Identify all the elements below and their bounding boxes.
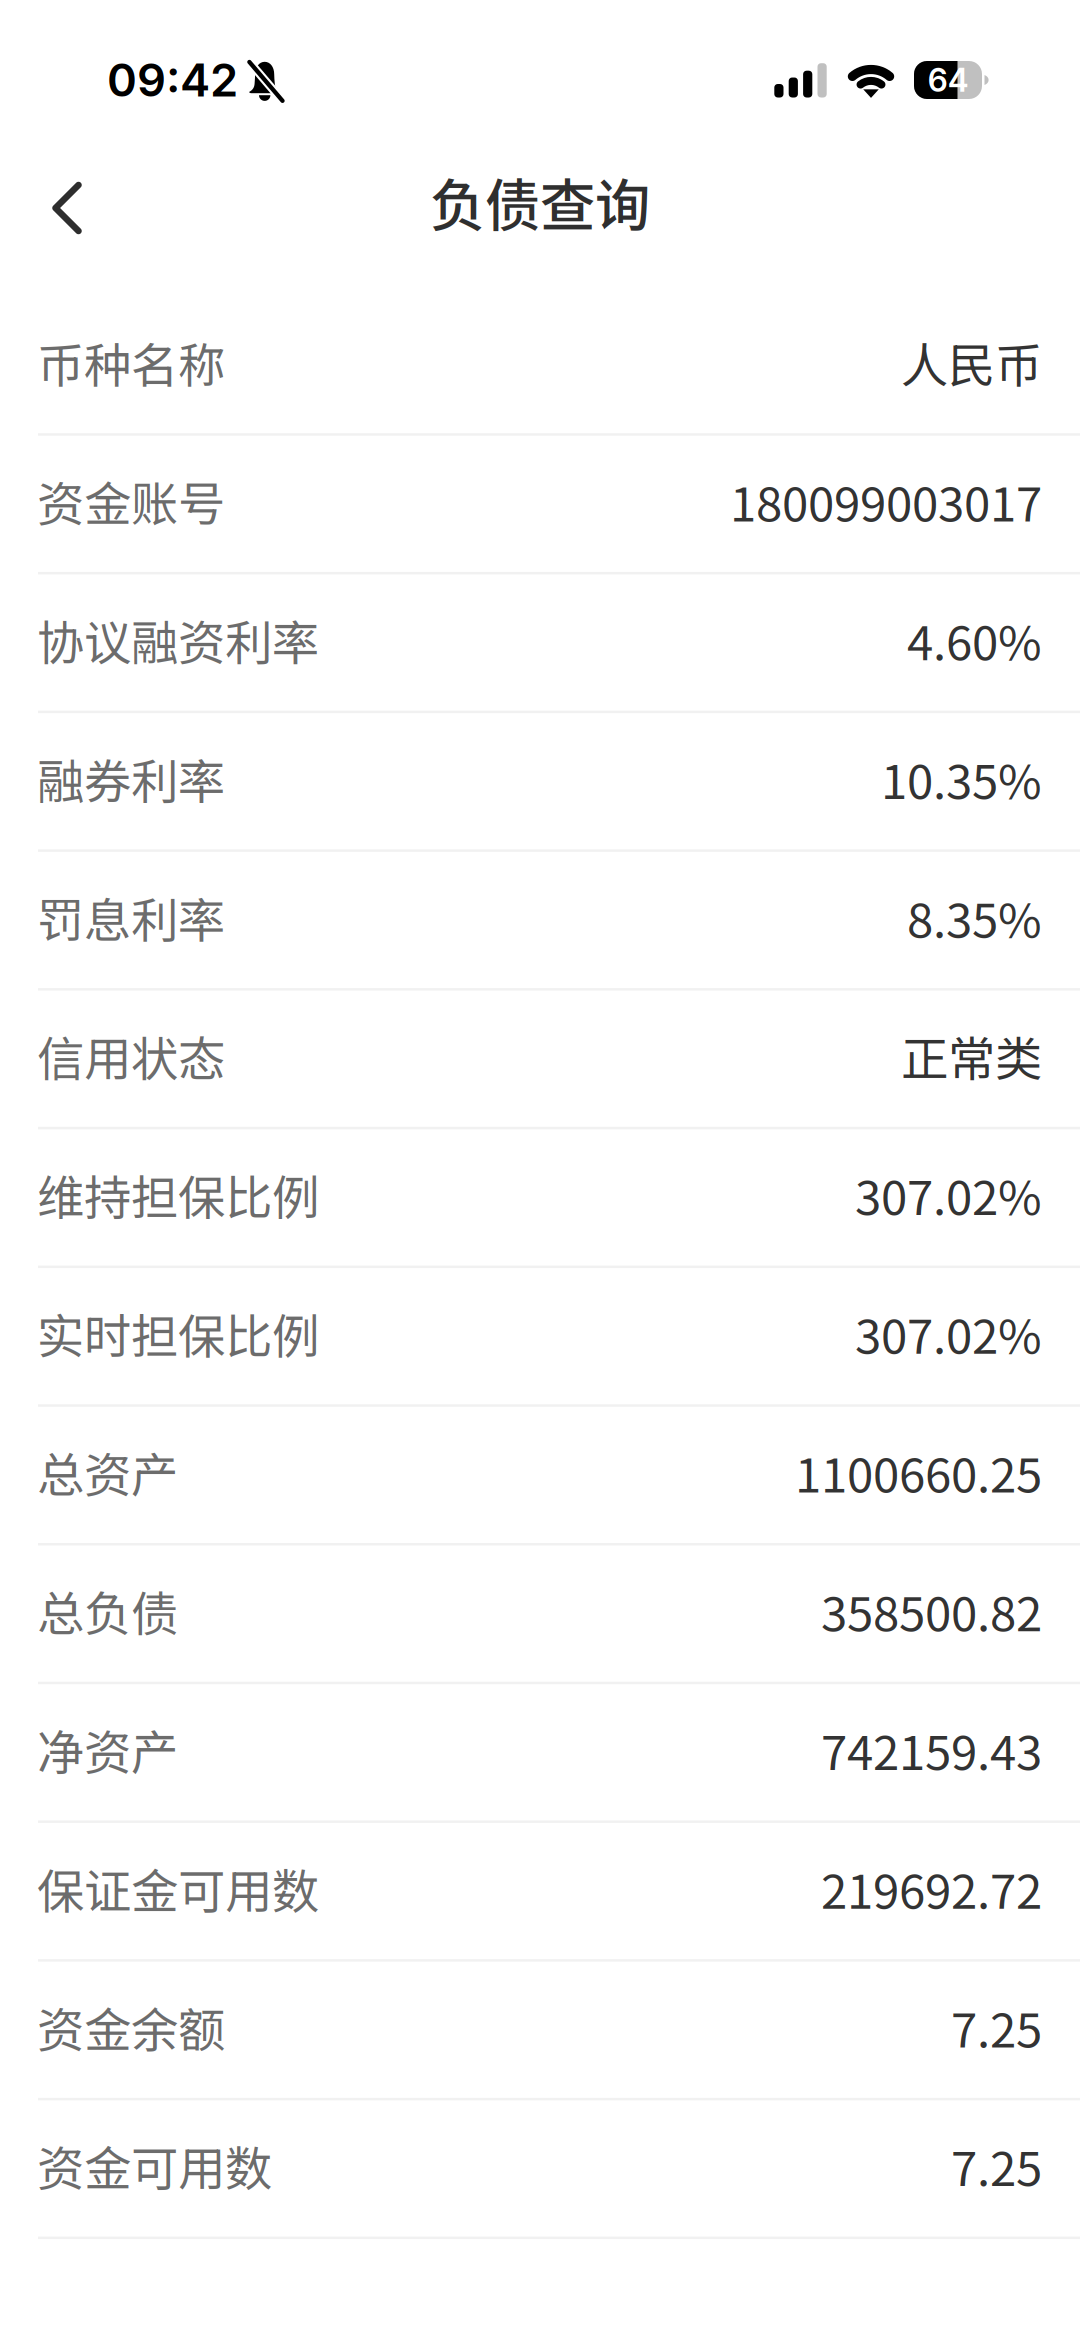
staticText: 8.35% <box>907 883 1042 951</box>
staticText: 7.25 <box>951 2131 1042 2200</box>
staticText: 协议融资利率 <box>37 605 319 674</box>
staticText: 净资产 <box>37 1715 178 1783</box>
staticText: 10.35% <box>881 744 1042 812</box>
staticText: 7.25 <box>951 1992 1042 2061</box>
staticText: 正常类 <box>901 1021 1042 1090</box>
staticText: 实时担保比例 <box>37 1299 319 1367</box>
staticText: 维持担保比例 <box>37 1160 319 1229</box>
staticText: 09:42 <box>107 53 238 107</box>
staticText: 资金账号 <box>37 467 225 535</box>
staticText: 358500.82 <box>821 1576 1042 1645</box>
staticText: 307.02% <box>855 1299 1042 1367</box>
staticText: 180099003017 <box>730 467 1042 535</box>
staticText: 307.02% <box>855 1160 1042 1229</box>
staticText: 219692.72 <box>821 1854 1042 1922</box>
staticText: 罚息利率 <box>37 883 225 951</box>
staticText: 64 <box>927 61 968 99</box>
staticText: 保证金可用数 <box>37 1854 319 1922</box>
staticText: 资金余额 <box>37 1992 225 2061</box>
staticText: 资金可用数 <box>37 2131 272 2200</box>
staticText: 信用状态 <box>37 1021 225 1090</box>
staticText: 人民币 <box>901 328 1042 396</box>
staticText: 总负债 <box>37 1576 178 1645</box>
staticText: 负债查询 <box>430 161 650 241</box>
staticText: 1100660.25 <box>795 1438 1042 1506</box>
staticText: 融券利率 <box>37 744 225 812</box>
staticText: 总资产 <box>37 1438 178 1506</box>
staticText: 4.60% <box>907 605 1042 674</box>
staticText: 币种名称 <box>37 328 225 396</box>
staticText: 742159.43 <box>821 1715 1042 1783</box>
button[interactable]: 返回 <box>17 158 117 258</box>
